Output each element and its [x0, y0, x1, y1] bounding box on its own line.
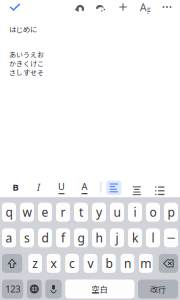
button[interactable]: Text format: [134, 0, 156, 14]
button[interactable]: Next keyboard: [27, 279, 42, 298]
button[interactable]: s: [20, 228, 34, 247]
staticText: 改行: [150, 283, 166, 295]
staticText: l: [151, 230, 154, 246]
staticText: p: [167, 204, 174, 220]
button[interactable]: Redo: [90, 0, 112, 14]
button[interactable]: 空白: [65, 279, 134, 298]
staticText: j: [115, 230, 118, 246]
staticText: k: [132, 230, 138, 246]
button[interactable]: z: [28, 254, 42, 273]
button[interactable]: n: [120, 254, 134, 273]
staticText: y: [96, 204, 102, 220]
button[interactable]: t: [74, 203, 88, 222]
button[interactable]: f: [56, 228, 70, 247]
staticText: a: [5, 230, 12, 246]
button[interactable]: I: [27, 177, 50, 197]
staticText: 空白: [92, 283, 108, 295]
button[interactable]: i: [128, 203, 142, 222]
staticText: n: [124, 255, 131, 271]
button[interactable]: Shift: [2, 254, 22, 273]
staticText: d: [41, 230, 48, 246]
button[interactable]: U: [50, 177, 73, 197]
staticText: m: [140, 255, 151, 271]
staticText: A: [140, 0, 147, 14]
button[interactable]: Undo: [68, 0, 90, 14]
staticText: さしすせそ: [9, 67, 44, 77]
staticText: s: [24, 230, 30, 246]
staticText: g: [77, 230, 84, 246]
staticText: q: [5, 204, 12, 220]
staticText: I: [37, 181, 40, 193]
button[interactable]: y: [92, 203, 106, 222]
button[interactable]: j: [110, 228, 124, 247]
button[interactable]: B: [4, 177, 27, 197]
staticText: z: [32, 255, 38, 271]
staticText: A: [81, 180, 87, 193]
button[interactable]: Done: [4, 0, 26, 14]
staticText: e: [41, 204, 48, 220]
staticText: c: [69, 255, 75, 271]
staticText: x: [51, 255, 57, 271]
button[interactable]: Bulleted list: [148, 177, 171, 197]
staticText: ー: [166, 231, 175, 244]
button[interactable]: w: [20, 203, 34, 222]
button[interactable]: h: [92, 228, 106, 247]
button[interactable]: r: [56, 203, 70, 222]
staticText: 123: [5, 283, 20, 295]
button[interactable]: b: [102, 254, 116, 273]
button[interactable]: Align left: [102, 177, 125, 197]
button[interactable]: ー: [164, 228, 178, 247]
staticText: i: [133, 204, 136, 220]
staticText: B: [12, 181, 18, 193]
button[interactable]: 改行: [138, 279, 178, 298]
button[interactable]: Insert: [112, 0, 134, 14]
button[interactable]: l: [146, 228, 160, 247]
button[interactable]: d: [38, 228, 52, 247]
staticText: h: [95, 230, 102, 246]
button[interactable]: a: [2, 228, 16, 247]
staticText: b: [105, 255, 112, 271]
staticText: r: [60, 204, 65, 220]
staticText: f: [61, 230, 65, 246]
button[interactable]: v: [84, 254, 97, 273]
button[interactable]: Align center: [125, 177, 148, 197]
button[interactable]: More: [156, 0, 178, 14]
button[interactable]: m: [139, 254, 153, 273]
staticText: t: [79, 204, 83, 220]
button[interactable]: x: [47, 254, 60, 273]
staticText: U: [58, 180, 65, 193]
staticText: o: [149, 204, 156, 220]
button[interactable]: A: [73, 177, 96, 197]
button[interactable]: o: [146, 203, 160, 222]
button[interactable]: Dictate: [45, 279, 62, 298]
button[interactable]: c: [65, 254, 79, 273]
staticText: u: [113, 204, 120, 220]
staticText: あいうえお: [9, 49, 44, 59]
staticText: w: [22, 204, 31, 220]
button[interactable]: p: [164, 203, 178, 222]
button[interactable]: q: [2, 203, 16, 222]
staticText: はじめに: [9, 24, 37, 34]
button[interactable]: 123: [2, 279, 23, 298]
button[interactable]: g: [74, 228, 88, 247]
button[interactable]: u: [110, 203, 124, 222]
button[interactable]: e: [38, 203, 52, 222]
button[interactable]: Delete: [159, 254, 178, 273]
staticText: v: [87, 255, 93, 271]
button[interactable]: k: [128, 228, 142, 247]
staticText: かきくけこ: [9, 58, 44, 68]
